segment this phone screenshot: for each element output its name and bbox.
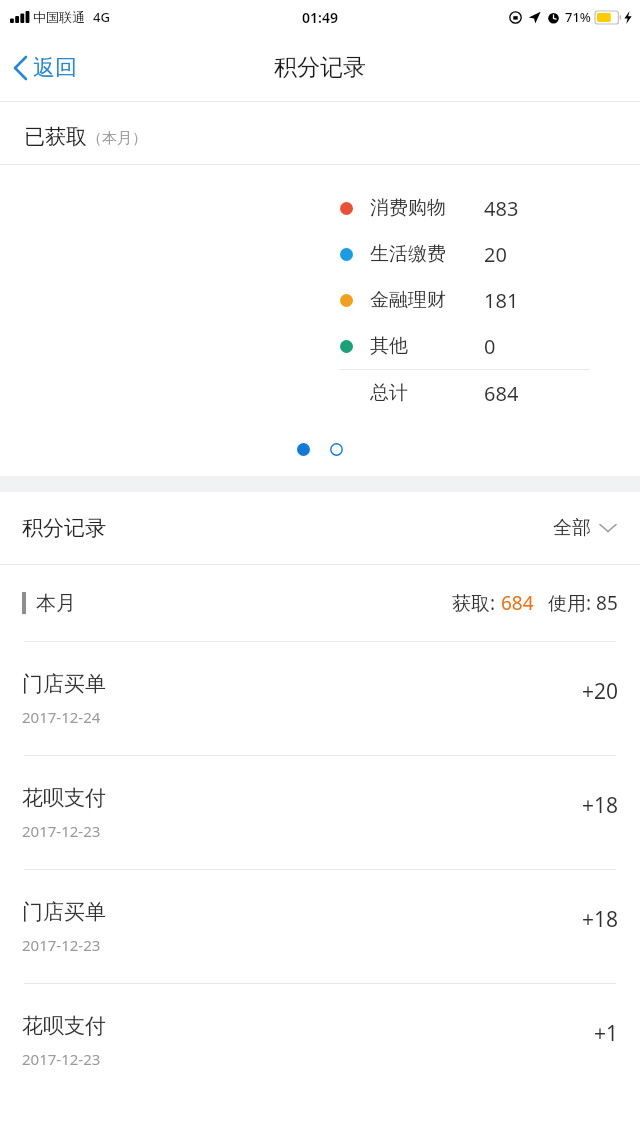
staticText: 中国联通 bbox=[33, 9, 85, 25]
staticText: 全部 bbox=[553, 516, 591, 540]
staticText: 返回 bbox=[33, 54, 77, 82]
staticText: （本月） bbox=[87, 129, 147, 148]
staticText: 本月 bbox=[36, 591, 76, 616]
staticText: +1 bbox=[593, 1019, 618, 1048]
staticText: 获取: bbox=[452, 590, 501, 616]
staticText: 4G bbox=[93, 8, 110, 26]
staticText: 181 bbox=[484, 287, 519, 314]
staticText: +20 bbox=[581, 677, 618, 706]
staticText: 684 bbox=[501, 590, 534, 616]
button[interactable]: 花呗支付 bbox=[0, 984, 640, 1097]
staticText: 其他 bbox=[370, 334, 408, 358]
staticText: 2017-12-23 bbox=[22, 821, 101, 841]
staticText: 消费购物 bbox=[370, 196, 446, 220]
staticText: 71% bbox=[565, 8, 591, 26]
staticText: +18 bbox=[581, 905, 618, 934]
staticText: +18 bbox=[581, 791, 618, 820]
staticText: 门店买单 bbox=[22, 899, 106, 925]
staticText: 积分记录 bbox=[274, 53, 366, 82]
staticText: 483 bbox=[484, 195, 519, 222]
staticText: 总计 bbox=[370, 381, 408, 405]
button[interactable]: 花呗支付 bbox=[0, 756, 640, 869]
button[interactable]: 返回 bbox=[0, 46, 91, 90]
button[interactable]: 全部 bbox=[549, 510, 620, 546]
staticText: 0 bbox=[484, 333, 496, 360]
staticText: 2017-12-24 bbox=[22, 707, 101, 727]
staticText: 使用: 85 bbox=[548, 590, 618, 616]
staticText: 2017-12-23 bbox=[22, 1049, 101, 1069]
staticText: 2017-12-23 bbox=[22, 935, 101, 955]
staticText: 生活缴费 bbox=[370, 242, 446, 266]
staticText: 门店买单 bbox=[22, 671, 106, 697]
staticText: 已获取 bbox=[24, 124, 87, 150]
staticText: 金融理财 bbox=[370, 288, 446, 312]
staticText: 花呗支付 bbox=[22, 785, 106, 811]
staticText: 684 bbox=[484, 380, 519, 407]
staticText: 花呗支付 bbox=[22, 1013, 106, 1039]
staticText: 积分记录 bbox=[22, 515, 106, 541]
staticText: 20 bbox=[484, 241, 507, 268]
button[interactable]: 门店买单 bbox=[0, 870, 640, 983]
staticText: 01:49 bbox=[302, 8, 338, 27]
button[interactable]: 门店买单 bbox=[0, 642, 640, 755]
